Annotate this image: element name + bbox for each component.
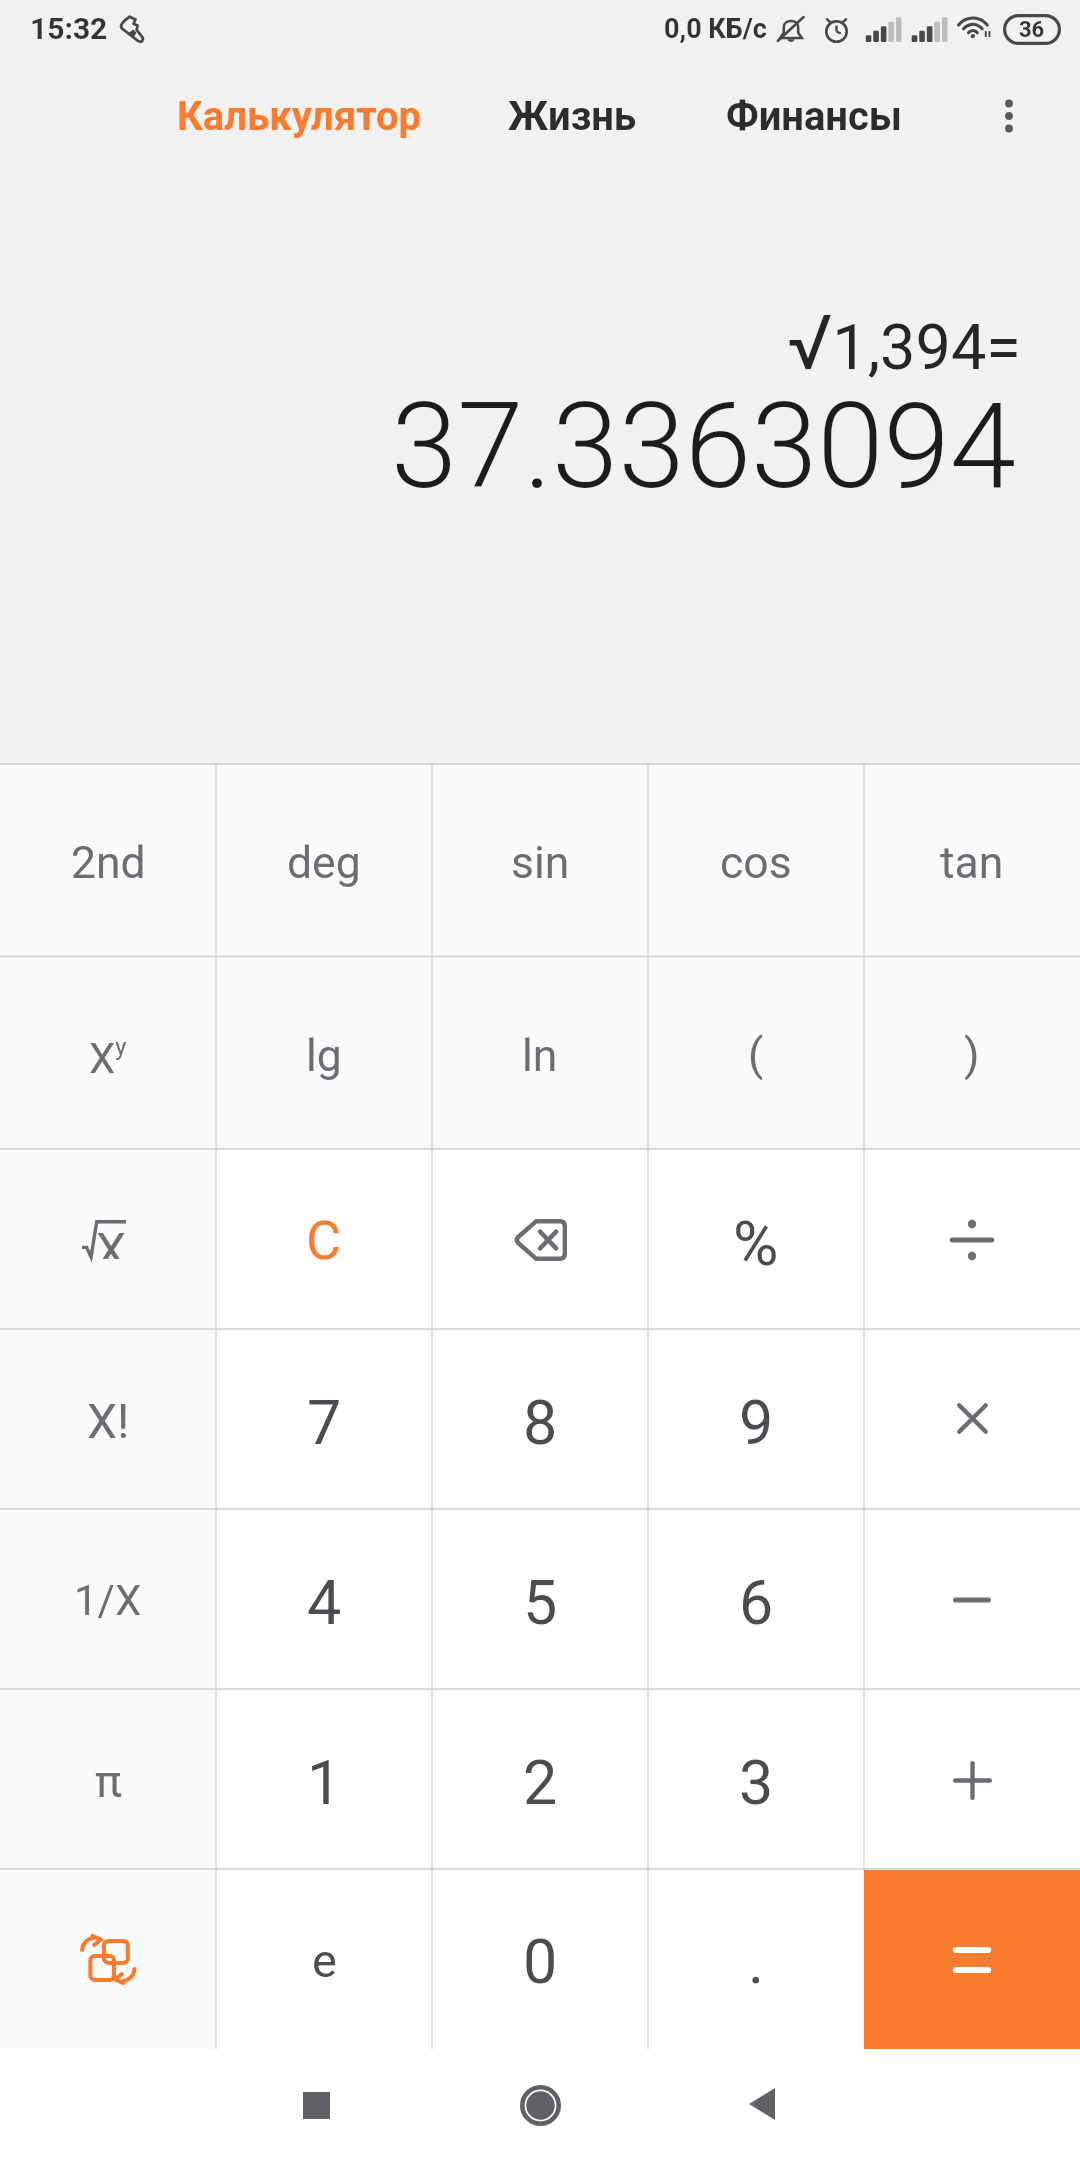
- staticText: 0: [523, 1926, 558, 1997]
- other: Convert: [81, 1935, 135, 1984]
- staticText: Xy: [89, 1033, 127, 1083]
- staticText: lg: [306, 1030, 342, 1082]
- button[interactable]: 1/X: [0, 1510, 216, 1690]
- button[interactable]: deg: [216, 764, 432, 957]
- staticText: 8: [523, 1387, 558, 1458]
- button[interactable]: Жизнь: [508, 93, 637, 140]
- staticText: .: [748, 1926, 765, 1997]
- staticText: Финансы: [726, 93, 902, 140]
- staticText: Жизнь: [508, 93, 637, 140]
- staticText: ): [964, 1029, 980, 1081]
- button[interactable]: sin: [432, 764, 648, 957]
- button[interactable]: 6: [648, 1510, 864, 1690]
- button[interactable]: Backspace: [432, 1150, 648, 1330]
- staticText: 9: [739, 1387, 774, 1458]
- button[interactable]: Финансы: [726, 93, 902, 140]
- staticText: deg: [287, 837, 361, 889]
- button[interactable]: Plus: [864, 1690, 1080, 1870]
- other: Multiply: [957, 1403, 988, 1434]
- staticText: sin: [511, 837, 570, 889]
- button[interactable]: C: [216, 1150, 432, 1330]
- staticText: tan: [940, 837, 1004, 889]
- staticText: 6: [739, 1567, 774, 1638]
- button[interactable]: Recent apps: [268, 2057, 364, 2153]
- staticText: 3: [739, 1747, 774, 1818]
- staticText: 1/X: [74, 1576, 142, 1625]
- button[interactable]: 7: [216, 1330, 432, 1510]
- button[interactable]: e: [216, 1870, 432, 2049]
- button[interactable]: (: [648, 957, 864, 1150]
- button[interactable]: ): [864, 957, 1080, 1150]
- staticText: (: [748, 1029, 764, 1081]
- button[interactable]: 3: [648, 1690, 864, 1870]
- staticText: cos: [720, 837, 792, 889]
- button[interactable]: π: [0, 1690, 216, 1870]
- button[interactable]: 5: [432, 1510, 648, 1690]
- button[interactable]: lg: [216, 957, 432, 1150]
- staticText: √1,394=: [787, 298, 1021, 387]
- staticText: 36: [1019, 17, 1045, 43]
- button[interactable]: 9: [648, 1330, 864, 1510]
- button[interactable]: %: [648, 1150, 864, 1330]
- staticText: 37.3363094: [391, 376, 1017, 516]
- button[interactable]: Xy: [0, 957, 216, 1150]
- button[interactable]: Equals: [864, 1870, 1080, 2049]
- staticText: 2nd: [71, 837, 146, 889]
- button[interactable]: cos: [648, 764, 864, 957]
- button[interactable]: X!: [0, 1330, 216, 1510]
- button[interactable]: Unit converter: [0, 1870, 216, 2049]
- button[interactable]: Multiply: [864, 1330, 1080, 1510]
- other: Divide: [952, 1221, 992, 1259]
- staticText: X!: [87, 1393, 130, 1449]
- button[interactable]: 2: [432, 1690, 648, 1870]
- button[interactable]: Square root: [0, 1150, 216, 1330]
- button[interactable]: Back: [714, 2057, 810, 2153]
- staticText: 2: [523, 1747, 558, 1818]
- staticText: C: [306, 1209, 342, 1272]
- staticText: 4: [307, 1567, 342, 1638]
- other: Plus: [953, 1761, 992, 1800]
- other: Square root: [82, 1220, 126, 1257]
- staticText: 7: [307, 1387, 342, 1458]
- staticText: 1: [307, 1747, 342, 1818]
- button[interactable]: tan: [864, 764, 1080, 957]
- staticText: 0,0 КБ/c: [664, 13, 767, 45]
- button[interactable]: Home: [492, 2057, 588, 2153]
- staticText: 15:32: [30, 11, 108, 46]
- button[interactable]: 2nd: [0, 764, 216, 957]
- button[interactable]: 4: [216, 1510, 432, 1690]
- other: Backspace: [513, 1219, 567, 1261]
- button[interactable]: Minus: [864, 1510, 1080, 1690]
- staticText: X: [96, 1222, 127, 1259]
- staticText: π: [95, 1755, 122, 1808]
- button[interactable]: 1: [216, 1690, 432, 1870]
- button[interactable]: Divide: [864, 1150, 1080, 1330]
- button[interactable]: .: [648, 1870, 864, 2049]
- button[interactable]: More options: [979, 86, 1039, 146]
- button[interactable]: Калькулятор: [177, 93, 422, 140]
- other: Minus: [953, 1595, 991, 1605]
- other: Equals: [953, 1947, 991, 1973]
- button[interactable]: 0: [432, 1870, 648, 2049]
- staticText: Калькулятор: [177, 93, 422, 140]
- staticText: 5: [523, 1567, 558, 1638]
- button[interactable]: ln: [432, 957, 648, 1150]
- staticText: ln: [522, 1030, 558, 1082]
- staticText: %: [733, 1207, 779, 1280]
- button[interactable]: 8: [432, 1330, 648, 1510]
- staticText: e: [312, 1933, 337, 1988]
